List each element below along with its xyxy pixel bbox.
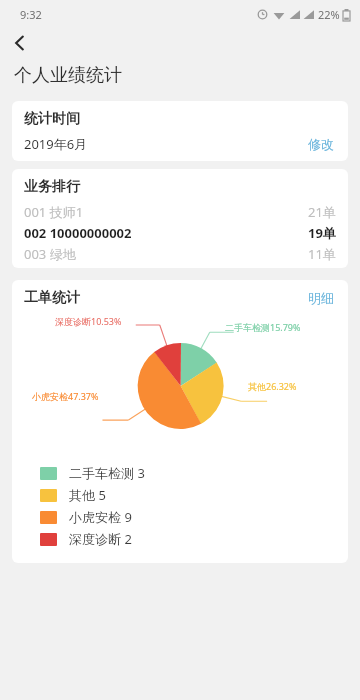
button[interactable]: 其他 5 [40, 484, 106, 506]
button[interactable]: 小虎安检 9 [40, 506, 132, 528]
staticText: 明细 [308, 290, 334, 306]
button[interactable]: 修改 [306, 134, 336, 154]
staticText: 修改 [308, 136, 334, 152]
staticText: 001 技师1 [24, 203, 84, 221]
staticText: 深度诊断10.53% [55, 315, 122, 327]
staticText: 业务排行 [24, 178, 80, 196]
button[interactable]: 二手车检测 3 [40, 462, 145, 484]
staticText: 深度诊断 2 [69, 530, 132, 548]
staticText: 002 10000000002 [24, 224, 132, 242]
staticText: 统计时间 [24, 110, 80, 128]
staticText: 9:32 [20, 7, 42, 22]
staticText: 11单 [308, 245, 336, 263]
staticText: 2019年6月 [24, 135, 88, 153]
staticText: 22% [318, 7, 340, 22]
button[interactable]: 明细 [306, 288, 336, 308]
staticText: 二手车检测 3 [69, 464, 145, 482]
staticText: 21单 [308, 203, 336, 221]
staticText: 工单统计 [24, 289, 80, 307]
staticText: 二手车检测15.79% [225, 321, 301, 333]
staticText: 其他26.32% [248, 380, 297, 392]
staticText: 003 绿地 [24, 245, 76, 263]
button[interactable]: Back [0, 28, 40, 58]
staticText: 其他 5 [69, 486, 106, 504]
button[interactable]: 深度诊断 2 [40, 528, 132, 550]
staticText: 小虎安检 9 [69, 508, 132, 526]
button[interactable]: 002 10000000002 [12, 222, 348, 243]
staticText: 小虎安检47.37% [32, 390, 99, 402]
button[interactable]: 003 绿地 [12, 243, 348, 264]
staticText: 个人业绩统计 [14, 64, 122, 87]
button[interactable]: 001 技师1 [12, 201, 348, 222]
staticText: 19单 [308, 224, 336, 242]
